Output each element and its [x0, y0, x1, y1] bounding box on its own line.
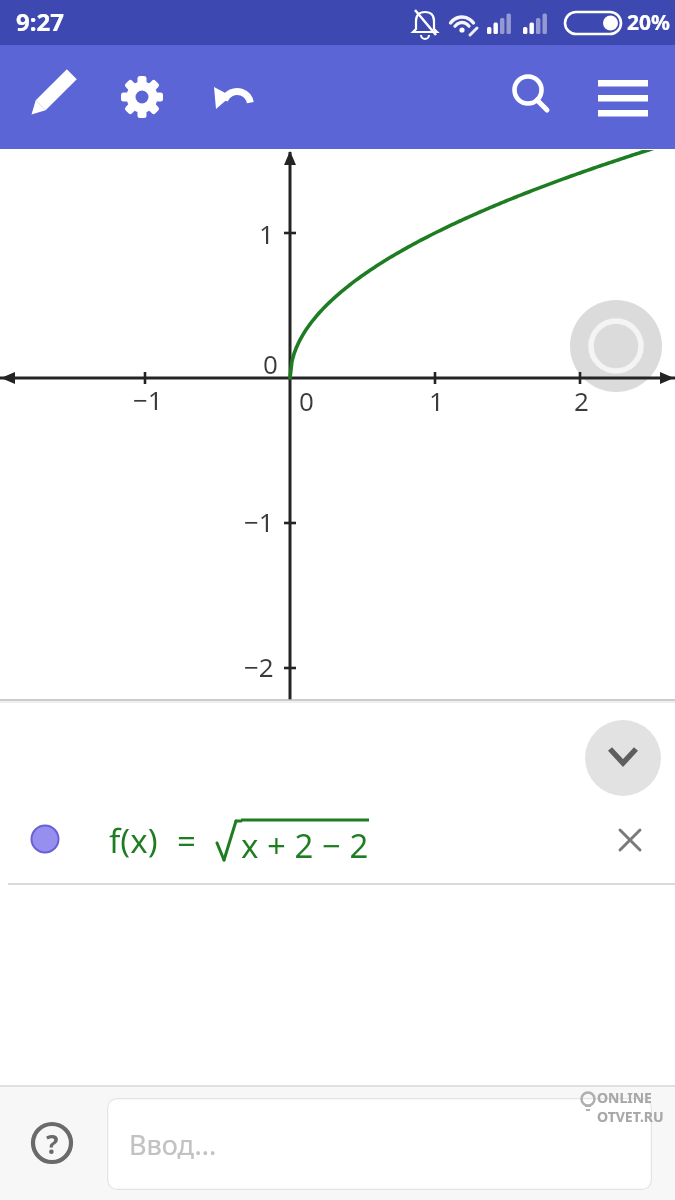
staticText: ONLINE	[597, 1088, 652, 1107]
button[interactable]: f(x)	[0, 800, 592, 880]
button[interactable]	[595, 64, 651, 120]
staticText: x + 2 − 2	[241, 823, 369, 868]
staticText: −1	[133, 382, 163, 417]
button[interactable]	[570, 300, 662, 392]
staticText: 1	[259, 216, 274, 251]
button[interactable]	[500, 64, 556, 120]
button[interactable]	[114, 68, 170, 124]
button[interactable]	[204, 70, 262, 128]
staticText: −2	[244, 649, 274, 684]
staticText: 2	[574, 383, 589, 418]
staticText: 1	[429, 383, 444, 418]
staticText: 9:27	[16, 5, 64, 38]
staticText: 0	[263, 346, 278, 381]
button[interactable]: Ввод...	[107, 1098, 652, 1190]
staticText: 20%	[627, 8, 670, 37]
staticText: −1	[244, 504, 274, 539]
button[interactable]	[26, 68, 82, 124]
staticText: 0	[299, 383, 314, 418]
staticText: =	[177, 818, 196, 863]
button[interactable]: ?	[24, 1115, 80, 1171]
staticText: ?	[46, 1126, 59, 1161]
staticText: Ввод...	[129, 1126, 217, 1163]
staticText: OTVET.RU	[597, 1107, 664, 1126]
button[interactable]	[585, 720, 661, 796]
staticText: f(x)	[109, 818, 158, 863]
button[interactable]	[602, 812, 658, 868]
